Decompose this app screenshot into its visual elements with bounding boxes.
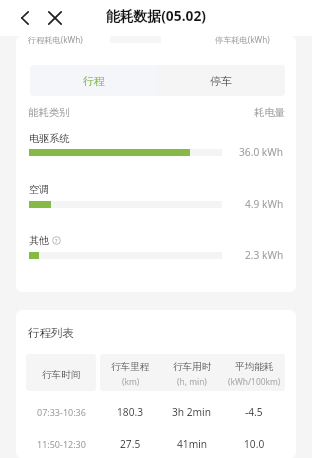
staticText: 耗电量 xyxy=(254,106,286,119)
button[interactable]: 07:33-10:36 xyxy=(26,396,285,428)
staticText: 07:33-10:36 xyxy=(37,406,86,418)
staticText: 11:50-12:30 xyxy=(37,438,86,450)
button[interactable]: 11:50-12:30 xyxy=(26,428,285,458)
staticText: 行程列表 xyxy=(28,326,74,340)
staticText: 能耗数据(05.02) xyxy=(106,6,206,25)
staticText: (h, min) xyxy=(177,376,207,387)
staticText: 2.3 kWh xyxy=(245,248,284,262)
staticText: (km) xyxy=(122,376,140,387)
staticText: 36.0 kWh xyxy=(239,145,284,159)
staticText: 行车里程 xyxy=(111,361,150,373)
staticText: 其他 xyxy=(29,234,50,247)
staticText: 3h 2min xyxy=(172,405,212,419)
staticText: 行程 xyxy=(83,74,105,88)
staticText: 4.9 kWh xyxy=(245,197,284,211)
staticText: 平均能耗 xyxy=(235,361,274,373)
button[interactable]: 停车 xyxy=(157,65,285,96)
staticText: 电驱系统 xyxy=(29,132,70,145)
staticText: 180.3 xyxy=(117,405,144,419)
staticText: 能耗类别 xyxy=(28,106,70,119)
staticText: 停车耗电(kWh) xyxy=(215,36,270,45)
staticText: -4.5 xyxy=(245,405,263,419)
staticText: 41min xyxy=(177,437,208,451)
button[interactable]: Back xyxy=(14,7,36,29)
button[interactable]: 行车时间 xyxy=(26,354,96,391)
staticText: ? xyxy=(55,237,58,245)
staticText: 10.0 xyxy=(244,437,265,451)
button[interactable]: 行程 xyxy=(30,65,157,96)
staticText: 停车 xyxy=(210,74,232,88)
staticText: 行车用时 xyxy=(173,361,212,373)
staticText: 空调 xyxy=(29,183,50,196)
staticText: 行车时间 xyxy=(42,369,81,381)
staticText: 行程耗电(kWh) xyxy=(28,36,83,45)
button[interactable]: Close xyxy=(44,7,66,29)
staticText: (kWh/100km) xyxy=(228,376,281,387)
staticText: 27.5 xyxy=(120,437,141,451)
